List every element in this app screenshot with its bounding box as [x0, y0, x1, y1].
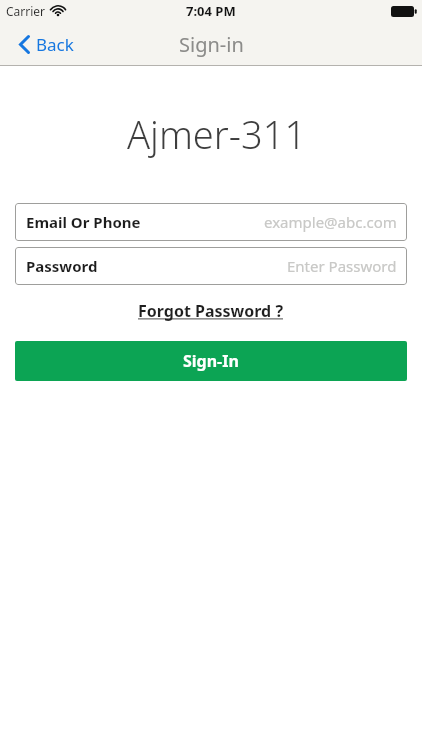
button[interactable]: Back — [19, 33, 74, 56]
button[interactable]: Email Or Phone — [15, 203, 407, 241]
button[interactable]: Forgot Password ? — [138, 300, 284, 322]
staticText: Email Or Phone — [26, 212, 141, 232]
staticText: Password — [26, 256, 98, 276]
staticText: Sign-In — [183, 350, 239, 372]
button[interactable]: Sign-In — [15, 341, 407, 381]
staticText: example@abc.com — [264, 212, 397, 232]
staticText: Back — [36, 33, 74, 56]
button[interactable]: Password — [15, 247, 407, 285]
staticText: Carrier — [6, 3, 46, 19]
staticText: Ajmer-311 — [127, 108, 307, 160]
staticText: Enter Password — [287, 256, 397, 276]
staticText: 7:04 PM — [186, 2, 236, 20]
staticText: Sign-in — [179, 31, 244, 58]
